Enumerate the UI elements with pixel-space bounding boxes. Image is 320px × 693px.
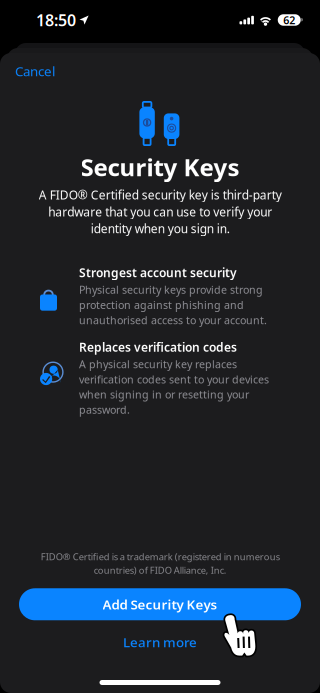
staticText: A FIDO® Certified security key is third-… <box>38 187 281 237</box>
staticText: Cancel <box>15 62 55 80</box>
staticText: Replaces verification codes <box>79 339 237 355</box>
staticText: Physical security keys provide strong pr… <box>79 283 267 327</box>
staticText: Strongest account security <box>79 265 237 281</box>
staticText: A physical security key replaces verific… <box>79 357 269 417</box>
staticText: 62 <box>283 13 295 27</box>
staticText: Add Security Keys <box>102 595 217 613</box>
staticText: 18:50 <box>36 9 76 31</box>
staticText: FIDO® Certified is a trademark (register… <box>40 550 279 576</box>
staticText: Security Keys <box>80 151 239 183</box>
button[interactable]: Add Security Keys <box>19 588 301 620</box>
button[interactable]: Learn more <box>109 627 211 657</box>
staticText: Learn more <box>123 633 197 651</box>
button[interactable]: Cancel <box>0 54 69 88</box>
